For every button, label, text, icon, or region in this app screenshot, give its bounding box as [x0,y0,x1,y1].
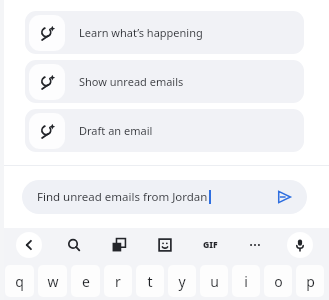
button[interactable]: Send [272,185,296,209]
button[interactable]: u [200,265,228,297]
staticText: Learn what’s happening [79,25,203,40]
button[interactable]: More options [242,232,268,258]
button[interactable]: r [104,265,132,297]
button[interactable]: o [264,265,292,297]
staticText: r [115,272,121,291]
staticText: t [147,272,153,291]
button[interactable]: p [296,265,324,297]
button[interactable]: GIF [197,232,223,258]
staticText: i [244,272,248,291]
button[interactable]: Search [61,232,87,258]
button[interactable]: y [168,265,196,297]
staticText: y [178,272,186,291]
button[interactable]: t [136,265,164,297]
staticText: GIF [203,239,218,251]
button[interactable]: Learn what’s happening [25,11,304,54]
staticText: p [306,272,315,291]
staticText: q [15,272,24,291]
button[interactable]: Translate [106,232,132,258]
button[interactable]: Find unread emails from Jordan [22,180,307,214]
staticText: Find unread emails from Jordan [37,189,208,205]
staticText: o [274,272,283,291]
button[interactable]: Show unread emails [25,60,304,103]
button[interactable]: e [71,265,100,297]
staticText: u [210,272,219,291]
button[interactable]: Voice input [287,232,313,258]
button[interactable]: Back [16,232,42,258]
staticText: Show unread emails [79,74,184,89]
button[interactable]: Stickers [152,232,178,258]
staticText: e [82,272,90,291]
button[interactable]: Draft an email [25,109,304,152]
button[interactable]: w [38,265,67,297]
button[interactable]: q [5,265,34,297]
button[interactable]: i [232,265,260,297]
staticText: w [47,272,59,291]
staticText: Draft an email [79,123,153,138]
